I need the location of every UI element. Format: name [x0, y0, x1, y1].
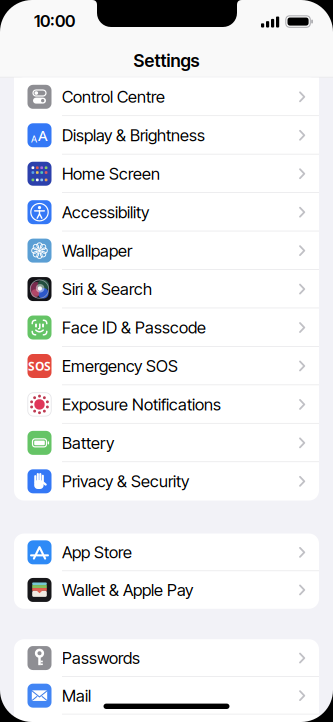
staticText: Home Screen — [62, 164, 160, 184]
button[interactable]: Wallet & Apple Pay — [14, 571, 319, 609]
staticText: Battery — [62, 433, 114, 453]
staticText: Privacy & Security — [62, 471, 189, 491]
staticText: Siri & Search — [62, 279, 152, 299]
staticText: A — [38, 125, 48, 145]
staticText: Wallet & Apple Pay — [62, 580, 193, 600]
button[interactable]: Accessibility — [14, 193, 319, 231]
button[interactable]: Face ID & Passcode — [14, 308, 319, 347]
staticText: Display & Brightness — [62, 125, 205, 145]
staticText: A — [31, 133, 37, 145]
button[interactable]: Home Screen — [14, 154, 319, 193]
button[interactable]: Control Centre — [14, 78, 319, 116]
staticText: Accessibility — [62, 202, 149, 222]
staticText: Mail — [62, 686, 91, 706]
button[interactable]: Mail — [14, 677, 319, 714]
staticText: Control Centre — [62, 87, 165, 107]
button[interactable]: Passwords — [14, 639, 319, 677]
staticText: Exposure Notifications — [62, 394, 221, 414]
staticText: Passwords — [62, 648, 140, 668]
staticText: Face ID & Passcode — [62, 317, 206, 337]
staticText: Settings — [133, 50, 199, 71]
staticText: 10:00 — [34, 11, 75, 31]
staticText: App Store — [62, 542, 132, 562]
button[interactable]: Privacy & Security — [14, 462, 319, 501]
staticText: Emergency SOS — [62, 356, 178, 376]
button[interactable]: Siri & Search — [14, 270, 319, 308]
button[interactable]: A — [14, 116, 319, 154]
staticText: Wallpaper — [62, 241, 132, 261]
button[interactable]: Battery — [14, 424, 319, 462]
staticText: SOS — [28, 358, 51, 374]
button[interactable]: Wallpaper — [14, 231, 319, 270]
button[interactable]: Exposure Notifications — [14, 385, 319, 424]
button[interactable]: SOS — [14, 347, 319, 385]
button[interactable]: App Store — [14, 534, 319, 571]
